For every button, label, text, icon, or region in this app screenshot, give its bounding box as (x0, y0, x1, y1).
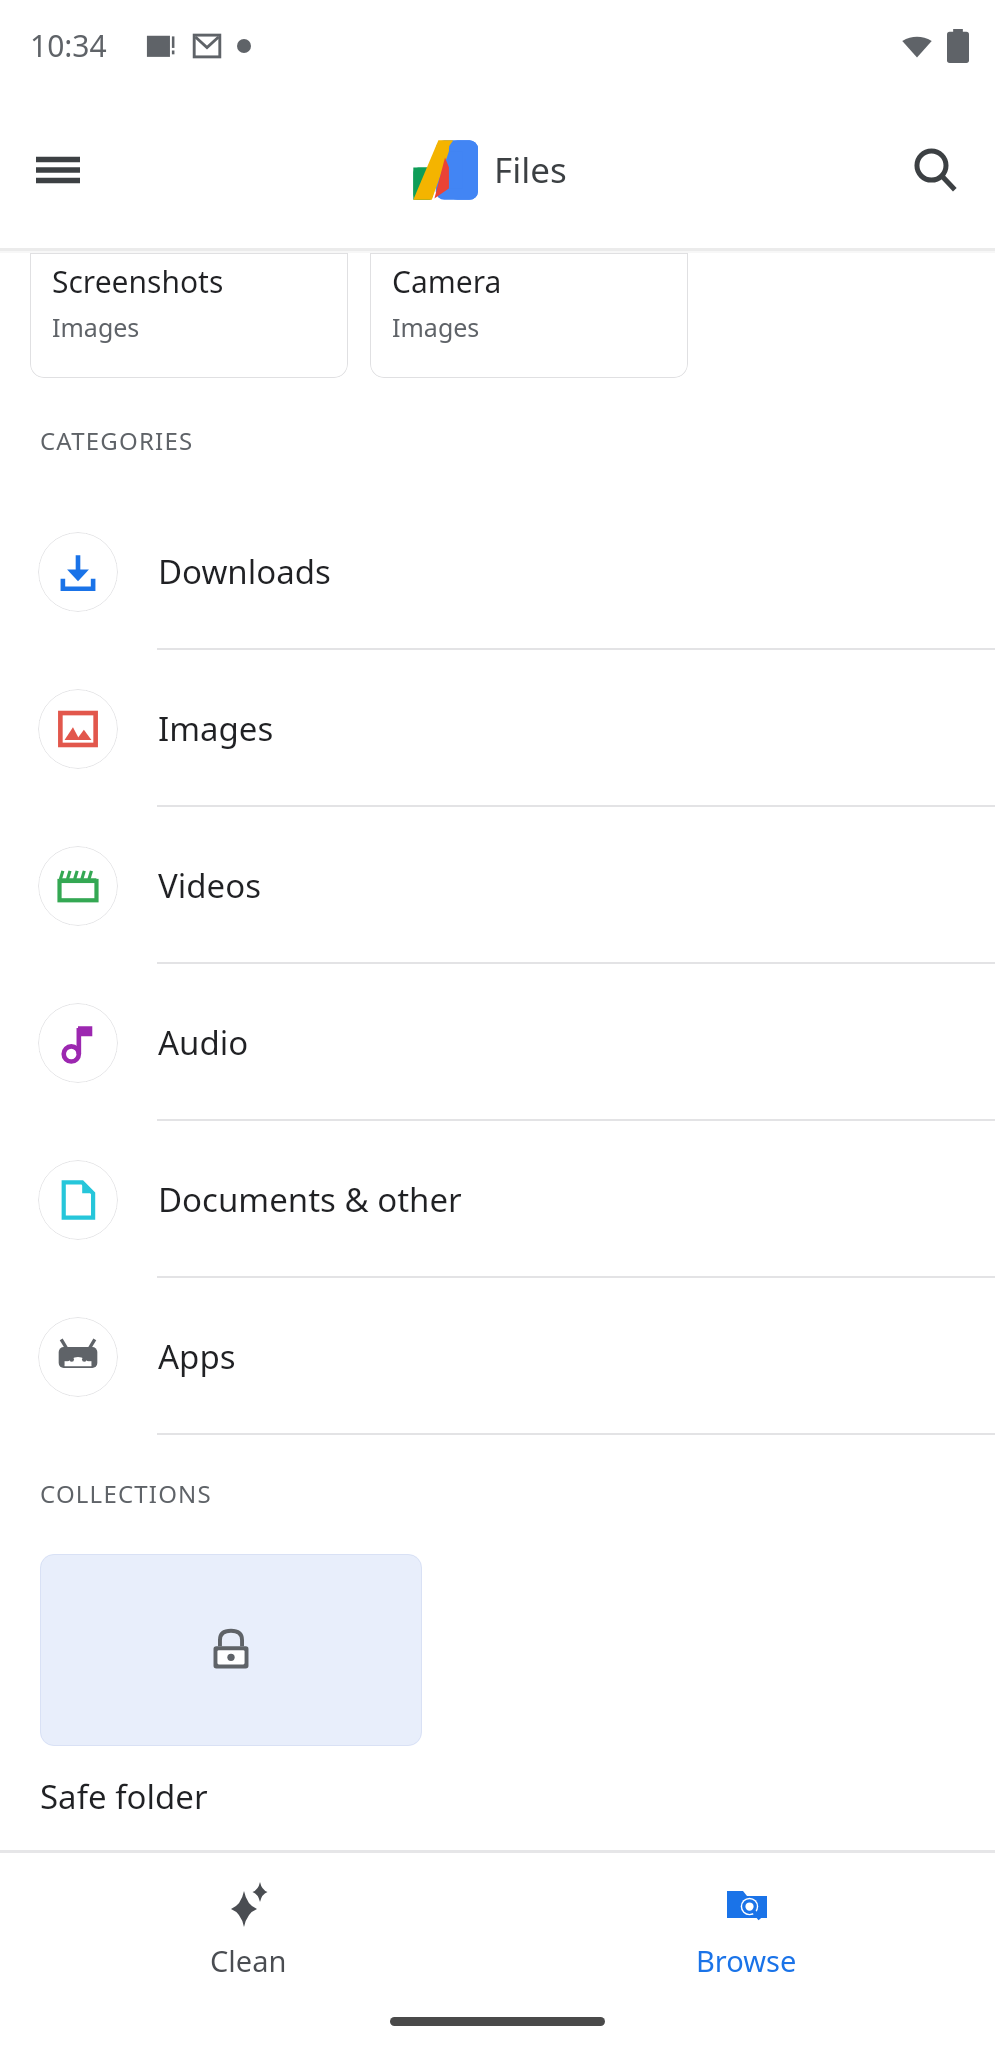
button[interactable]: Screenshots (30, 253, 348, 378)
staticText: Camera (392, 261, 502, 302)
staticText: Apps (158, 1334, 236, 1379)
button: CATEGORIES (40, 424, 995, 457)
staticText: CATEGORIES (40, 424, 194, 457)
button[interactable]: Clean (0, 1853, 497, 2048)
staticText: Browse (696, 1941, 797, 1980)
staticText: Downloads (158, 549, 331, 594)
staticText: Safe folder (40, 1774, 208, 1819)
button[interactable]: Videos (0, 807, 995, 964)
button[interactable]: Camera (370, 253, 688, 378)
button[interactable]: Audio (0, 964, 995, 1121)
staticText: Clean (210, 1941, 287, 1980)
staticText: Documents & other (158, 1177, 462, 1222)
button[interactable]: Documents & other (0, 1121, 995, 1278)
button[interactable]: Apps (0, 1278, 995, 1435)
button[interactable]: Images (0, 650, 995, 807)
button[interactable]: Open navigation menu (18, 130, 98, 210)
button[interactable]: Safe folder (40, 1554, 422, 1746)
staticText: Images (52, 310, 140, 344)
button: COLLECTIONS (40, 1477, 995, 1510)
button[interactable]: Browse (497, 1853, 995, 2048)
button[interactable]: Search (895, 130, 975, 210)
staticText: Images (158, 706, 274, 751)
staticText: Audio (158, 1020, 249, 1065)
staticText: Files (494, 146, 567, 194)
staticText: COLLECTIONS (40, 1477, 212, 1510)
staticText: 10:34 (30, 25, 107, 66)
staticText: Screenshots (52, 261, 224, 302)
button[interactable]: Downloads (0, 493, 995, 650)
button[interactable]: Files (412, 139, 567, 201)
staticText: Images (392, 310, 480, 344)
staticText: Videos (158, 863, 261, 908)
